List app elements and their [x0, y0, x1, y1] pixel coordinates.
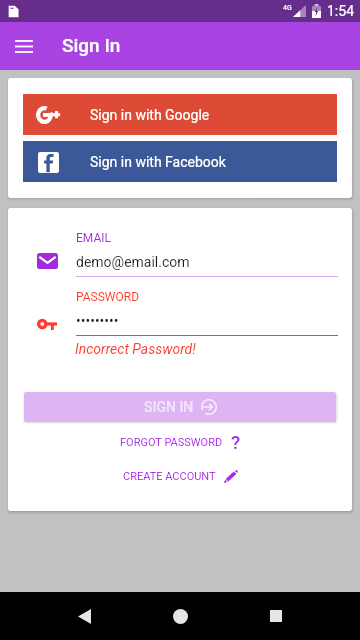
button[interactable]: Open navigation menu	[6, 28, 42, 64]
staticText: •••••••••	[76, 313, 119, 329]
staticText: Sign In	[62, 34, 121, 56]
staticText: SIGN IN	[144, 399, 194, 415]
staticText: FORGOT PASSWORD	[120, 436, 223, 449]
staticText: 4G	[283, 4, 292, 12]
button[interactable]: CREATE ACCOUNT	[117, 467, 244, 486]
staticText: Sign in with Facebook	[90, 154, 226, 170]
staticText: PASSWORD	[76, 290, 140, 304]
button[interactable]: Back	[60, 592, 108, 640]
staticText: ?	[231, 431, 241, 453]
button[interactable]: Sign in with Google	[23, 94, 337, 135]
staticText: 1:54	[327, 3, 354, 19]
staticText: Sign in with Google	[90, 107, 210, 123]
staticText: demo@email.com	[76, 254, 190, 270]
staticText: Incorrect Password!	[75, 341, 196, 357]
button[interactable]: FORGOT PASSWORD	[114, 428, 247, 456]
button[interactable]: Home	[156, 592, 204, 640]
staticText: CREATE ACCOUNT	[123, 470, 216, 483]
staticText: EMAIL	[76, 231, 111, 245]
button[interactable]: Sign in with Facebook	[23, 141, 337, 182]
button[interactable]: Recent apps	[252, 592, 300, 640]
button[interactable]: SIGN IN	[24, 392, 336, 422]
